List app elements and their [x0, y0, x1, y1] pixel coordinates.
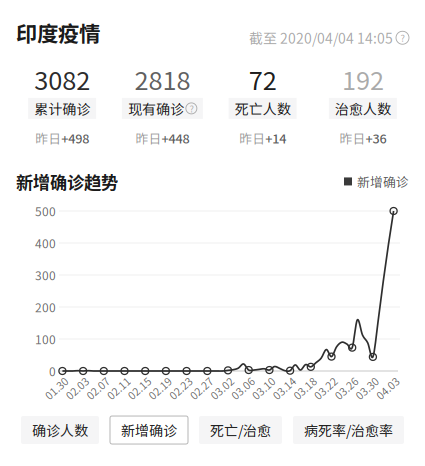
staticText: 02.15	[126, 380, 153, 396]
staticText: 02.07	[84, 380, 111, 396]
staticText: 03.30	[353, 380, 380, 396]
staticText: 3082	[34, 60, 90, 97]
staticText: 200	[35, 298, 56, 316]
button[interactable]: 死亡/治愈	[199, 416, 282, 444]
staticText: 03.26	[333, 380, 360, 396]
staticText: 昨日	[35, 129, 61, 147]
staticText: 新增确诊	[121, 420, 177, 440]
staticText: 新增确诊	[357, 172, 409, 191]
staticText: 死亡/治愈	[210, 420, 271, 440]
staticText: 治愈人数	[335, 98, 391, 119]
staticText: 02.11	[105, 380, 132, 396]
staticText: 确诊人数	[32, 420, 88, 440]
staticText: +36	[365, 129, 386, 147]
staticText: 昨日	[239, 129, 265, 147]
staticText: 新增确诊趋势	[16, 169, 118, 194]
staticText: 昨日	[135, 129, 161, 147]
staticText: +14	[265, 129, 286, 147]
staticText: 04.03	[374, 380, 401, 396]
staticText: 印度疫情	[16, 17, 100, 48]
staticText: 02.03	[64, 380, 91, 396]
staticText: ?	[189, 102, 193, 115]
staticText: 03.22	[312, 380, 339, 396]
button[interactable]: 病死率/治愈率	[293, 416, 404, 444]
staticText: 2818	[134, 60, 190, 97]
staticText: +498	[61, 129, 89, 147]
staticText: 现有确诊	[128, 98, 184, 119]
staticText: 03.18	[291, 380, 318, 396]
staticText: 0	[49, 362, 56, 380]
staticText: 192	[342, 60, 384, 97]
staticText: 昨日	[339, 129, 365, 147]
staticText: 01.30	[43, 380, 70, 396]
staticText: 400	[35, 234, 56, 252]
staticText: 02.23	[167, 380, 194, 396]
staticText: 500	[35, 202, 56, 220]
staticText: 累计确诊	[34, 98, 90, 119]
staticText: 病死率/治愈率	[304, 420, 393, 440]
button[interactable]: 确诊人数	[21, 416, 99, 444]
staticText: 300	[35, 266, 56, 284]
staticText: 02.27	[188, 380, 215, 396]
staticText: 03.02	[208, 380, 235, 396]
staticText: 截至 2020/04/04 14:05	[249, 28, 393, 48]
staticText: 03.10	[250, 380, 277, 396]
button[interactable]: 新增确诊	[110, 416, 188, 444]
staticText: 03.14	[271, 380, 298, 396]
staticText: ?	[400, 31, 404, 44]
staticText: 02.19	[146, 380, 173, 396]
staticText: 100	[35, 330, 56, 348]
staticText: 03.06	[229, 380, 256, 396]
staticText: 72	[249, 60, 277, 97]
staticText: +448	[161, 129, 189, 147]
staticText: 死亡人数	[235, 98, 291, 119]
